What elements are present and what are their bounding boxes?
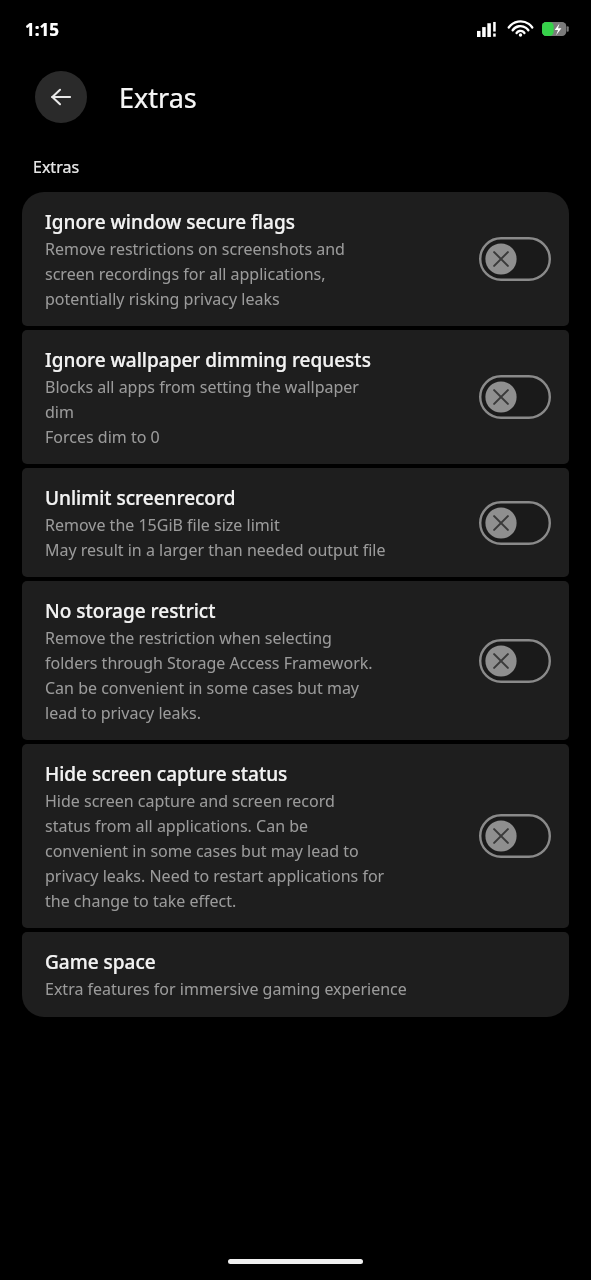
button[interactable]: Toggle off [479,375,551,419]
staticText: Hide screen capture and screen record st… [45,790,385,911]
button[interactable]: Toggle off [479,814,551,858]
staticText: Remove the 15GiB file size limit May res… [45,514,386,560]
button[interactable]: Toggle off [479,639,551,683]
staticText: Ignore wallpaper dimming requests [45,347,371,373]
button[interactable]: Toggle off [479,237,551,281]
button[interactable]: Back [35,71,87,123]
staticText: Extras [33,156,80,178]
button[interactable]: No storage restrict [22,581,569,740]
staticText: Game space [45,949,156,975]
button[interactable]: Ignore wallpaper dimming requests [22,330,569,464]
staticText: Ignore window secure flags [45,209,295,235]
staticText: Hide screen capture status [45,761,288,787]
staticText: Extras [119,79,197,116]
staticText: Remove the restriction when selecting fo… [45,627,373,723]
staticText: Blocks all apps from setting the wallpap… [45,376,359,447]
staticText: Extra features for immersive gaming expe… [45,978,407,1000]
button[interactable]: Hide screen capture status [22,744,569,928]
staticText: Unlimit screenrecord [45,485,236,511]
staticText: Remove restrictions on screenshots and s… [45,238,345,309]
button[interactable]: Game space [22,932,569,1017]
staticText: 1:15 [25,18,59,41]
button[interactable]: Unlimit screenrecord [22,468,569,577]
button[interactable]: Toggle off [479,501,551,545]
staticText: No storage restrict [45,598,216,624]
button[interactable]: Ignore window secure flags [22,192,569,326]
